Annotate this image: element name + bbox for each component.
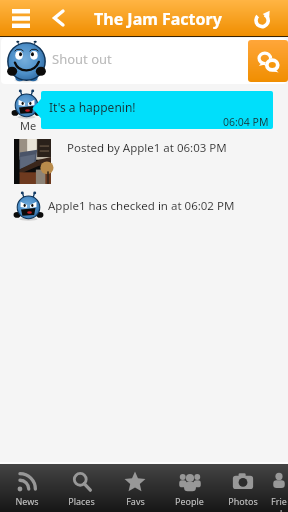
staticText: 06:04 PM <box>223 115 269 129</box>
staticText: Photos <box>228 495 258 507</box>
button[interactable]: Menu <box>6 3 36 33</box>
button[interactable]: Me <box>0 88 288 132</box>
staticText: Places <box>68 495 95 507</box>
button[interactable]: Shout out <box>248 40 288 82</box>
button[interactable]: News <box>0 464 54 512</box>
button[interactable]: Places <box>54 464 108 512</box>
button[interactable]: Posted by Apple1 at 06:03 PM <box>0 136 288 188</box>
button[interactable]: People <box>162 464 216 512</box>
staticText: Favs <box>126 495 145 507</box>
button[interactable]: Favs <box>108 464 162 512</box>
staticText: Apple1 has checked in at 06:02 PM <box>48 198 235 214</box>
button[interactable]: Back <box>45 5 71 31</box>
button[interactable]: Refresh <box>250 6 276 32</box>
button[interactable]: Apple1 has checked in at 06:02 PM <box>0 190 288 222</box>
staticText: News <box>15 495 39 507</box>
staticText: It's a happenin! <box>49 99 136 115</box>
staticText: Posted by Apple1 at 06:03 PM <box>67 140 227 156</box>
staticText: The Jam Factory <box>94 8 222 30</box>
button[interactable]: Friends <box>270 464 288 512</box>
button[interactable]: Photos <box>216 464 270 512</box>
staticText: Shout out <box>52 50 112 68</box>
staticText: Me <box>20 118 37 133</box>
staticText: Friends <box>270 495 288 512</box>
staticText: People <box>175 495 204 507</box>
